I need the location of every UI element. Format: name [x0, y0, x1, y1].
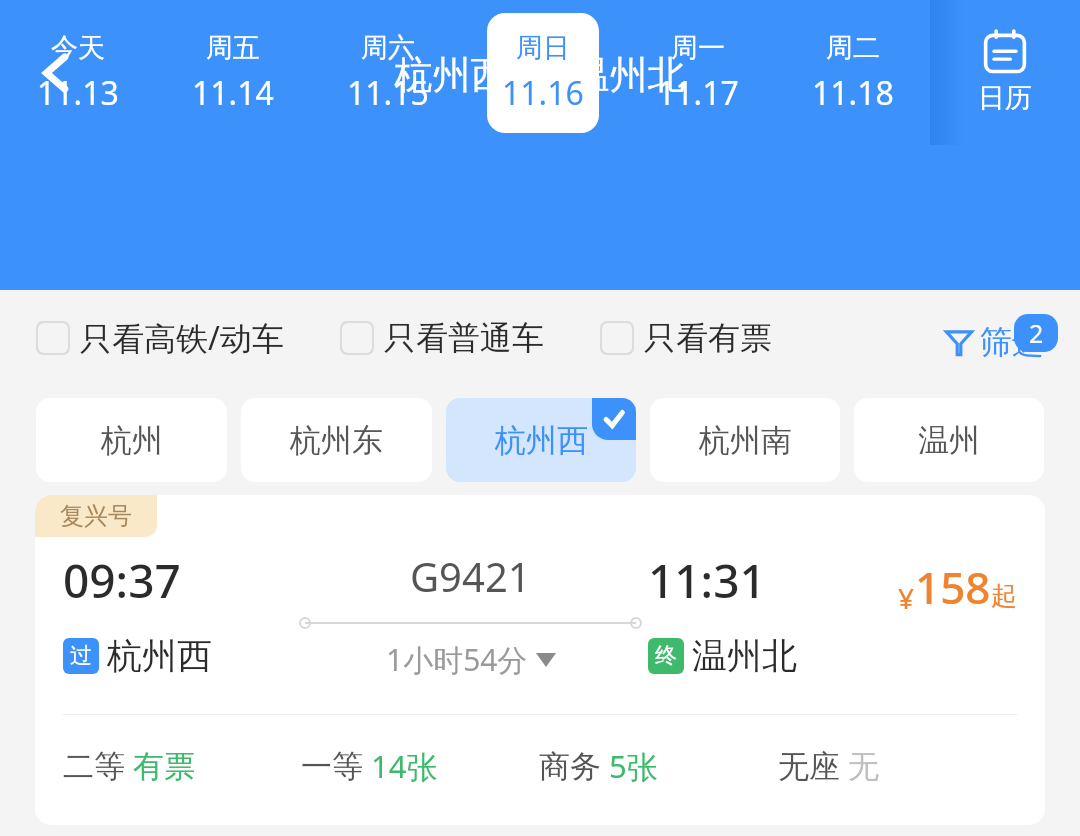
staticText: 终	[655, 642, 677, 670]
button[interactable]: 复兴号	[35, 495, 1045, 825]
staticText: 158	[915, 557, 991, 617]
staticText: 无	[848, 747, 879, 786]
staticText: 无座	[778, 747, 840, 786]
button[interactable]: 杭州东	[241, 398, 432, 482]
staticText: 杭州南	[699, 421, 792, 460]
staticText: 杭州	[101, 421, 163, 460]
staticText: 二等	[63, 747, 125, 786]
staticText: 商务	[539, 747, 601, 786]
staticText: 11.17	[657, 71, 739, 115]
button[interactable]: More options	[982, 35, 1058, 111]
staticText: 温州	[918, 421, 980, 460]
staticText: 杭州东	[290, 421, 383, 460]
staticText: 起	[991, 580, 1017, 613]
staticText: 11:31	[648, 549, 766, 612]
button[interactable]: Back	[18, 35, 94, 111]
staticText: 11.14	[192, 71, 274, 115]
staticText: ¥	[898, 579, 915, 617]
button[interactable]: 周二	[775, 0, 930, 145]
staticText: 11.15	[347, 71, 429, 115]
staticText: 筛选	[980, 322, 1044, 362]
staticText: 09:37	[63, 549, 181, 612]
button[interactable]: 杭州	[36, 398, 227, 482]
button[interactable]: 温州	[854, 398, 1044, 482]
staticText: 2	[1029, 316, 1044, 350]
button[interactable]: 今天	[0, 0, 155, 145]
staticText: 1小时54分	[386, 639, 528, 680]
staticText: 5张	[609, 745, 658, 787]
staticText: 只看有票	[644, 318, 772, 358]
staticText: 日历	[978, 81, 1032, 115]
staticText: 杭州西	[107, 634, 212, 678]
button[interactable]: 杭州西 <> 温州北	[394, 47, 686, 99]
staticText: 只看高铁/动车	[80, 316, 284, 360]
staticText: 11.18	[812, 71, 894, 115]
staticText: 14张	[371, 745, 438, 787]
button[interactable]: 周日	[465, 0, 620, 145]
button[interactable]: 周一	[620, 0, 775, 145]
button[interactable]: 只看有票	[600, 318, 772, 358]
button[interactable]: Calendar	[930, 0, 1080, 145]
staticText: 今天	[51, 31, 105, 65]
button[interactable]: 周六	[310, 0, 465, 145]
staticText: 只看普通车	[384, 318, 544, 358]
staticText: 过	[70, 642, 92, 670]
staticText: 11.16	[502, 71, 584, 115]
button[interactable]: 只看高铁/动车	[36, 316, 284, 360]
staticText: 温州北	[692, 634, 797, 678]
staticText: 周六	[361, 31, 415, 65]
staticText: 有票	[133, 747, 195, 786]
staticText: 复兴号	[60, 501, 132, 531]
button[interactable]: 周五	[155, 0, 310, 145]
staticText: 一等	[301, 747, 363, 786]
staticText: 周一	[671, 31, 725, 65]
staticText: 周五	[206, 31, 260, 65]
staticText: 周日	[516, 31, 570, 65]
staticText: 杭州西	[495, 421, 588, 460]
button[interactable]: 只看普通车	[340, 318, 544, 358]
button[interactable]: 筛选	[944, 314, 1058, 362]
staticText: G9421	[410, 549, 531, 603]
staticText: 11.13	[37, 71, 119, 115]
button[interactable]: 杭州南	[650, 398, 840, 482]
staticText: 周二	[826, 31, 880, 65]
button[interactable]: 杭州西	[446, 398, 636, 482]
